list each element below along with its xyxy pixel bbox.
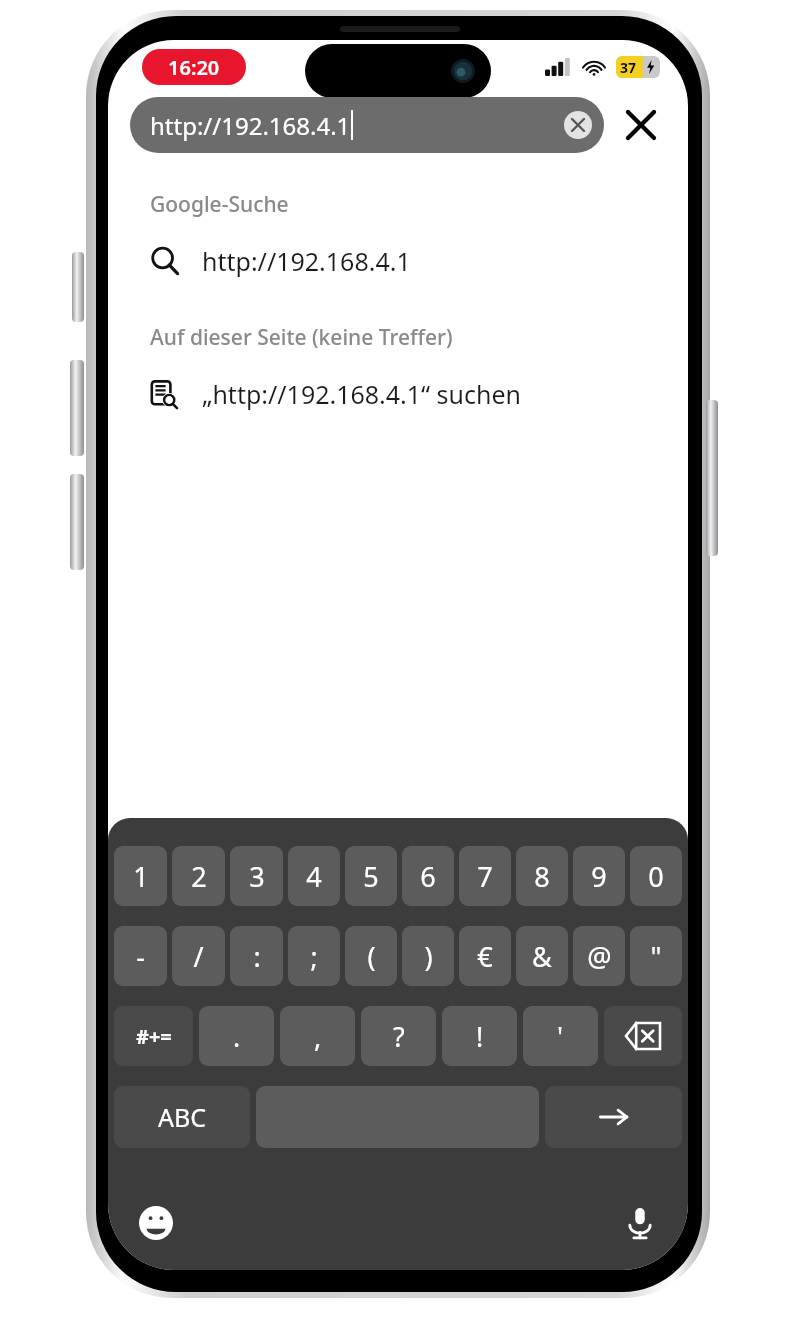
button[interactable]: 6 bbox=[402, 846, 454, 906]
button[interactable]: , bbox=[280, 1006, 355, 1066]
button[interactable]: : bbox=[230, 926, 283, 986]
button[interactable]: @ bbox=[573, 926, 625, 986]
button[interactable]: http://192.168.4.1 bbox=[108, 233, 688, 289]
button[interactable]: #+= bbox=[114, 1006, 193, 1066]
staticText: 6 bbox=[420, 858, 436, 895]
button[interactable]: 3 bbox=[230, 846, 283, 906]
button[interactable]: € bbox=[459, 926, 511, 986]
staticText: ABC bbox=[158, 1100, 207, 1134]
button[interactable]: Go bbox=[545, 1086, 682, 1148]
button[interactable]: 0 bbox=[630, 846, 682, 906]
staticText: : bbox=[253, 938, 261, 975]
staticText: 7 bbox=[477, 858, 493, 895]
staticText: Google-Suche bbox=[150, 190, 289, 219]
button[interactable]: 9 bbox=[573, 846, 625, 906]
button[interactable]: . bbox=[199, 1006, 274, 1066]
staticText: ? bbox=[393, 1018, 405, 1055]
button[interactable]: Backspace bbox=[604, 1006, 682, 1066]
button[interactable]: 8 bbox=[516, 846, 568, 906]
staticText: - bbox=[136, 938, 145, 975]
staticText: http://192.168.4.1 bbox=[202, 244, 411, 278]
button[interactable]: Emoji bbox=[134, 1201, 178, 1245]
button[interactable]: - bbox=[114, 926, 167, 986]
staticText: 5 bbox=[363, 858, 379, 895]
staticText: http://192.168.4.1 bbox=[150, 109, 351, 142]
staticText: ; bbox=[310, 938, 318, 975]
staticText: € bbox=[477, 938, 493, 975]
button[interactable]: ! bbox=[442, 1006, 517, 1066]
button[interactable]: / bbox=[172, 926, 225, 986]
staticText: . bbox=[233, 1018, 241, 1055]
button[interactable]: & bbox=[516, 926, 568, 986]
staticText: 3 bbox=[249, 858, 265, 895]
button[interactable]: Close bbox=[612, 96, 670, 154]
button[interactable]: Voice input bbox=[618, 1201, 662, 1245]
staticText: , bbox=[314, 1018, 322, 1055]
staticText: " bbox=[650, 938, 662, 975]
staticText: & bbox=[532, 938, 552, 975]
button[interactable]: ? bbox=[361, 1006, 436, 1066]
staticText: 2 bbox=[191, 858, 207, 895]
button[interactable]: 5 bbox=[345, 846, 397, 906]
button[interactable]: ) bbox=[402, 926, 454, 986]
button[interactable]: 2 bbox=[172, 846, 225, 906]
staticText: / bbox=[193, 938, 204, 975]
staticText: #+= bbox=[136, 1023, 172, 1050]
staticText: ! bbox=[476, 1018, 484, 1055]
staticText: „http://192.168.4.1“ suchen bbox=[202, 377, 521, 411]
staticText: 8 bbox=[534, 858, 550, 895]
button[interactable]: ; bbox=[288, 926, 340, 986]
button[interactable]: ' bbox=[523, 1006, 598, 1066]
button[interactable]: ( bbox=[345, 926, 397, 986]
button[interactable]: 7 bbox=[459, 846, 511, 906]
button[interactable]: ABC bbox=[114, 1086, 250, 1148]
staticText: 9 bbox=[591, 858, 607, 895]
button[interactable]: „http://192.168.4.1“ suchen bbox=[108, 366, 688, 422]
button[interactable]: Clear text bbox=[564, 111, 592, 139]
staticText: 37 bbox=[620, 58, 637, 77]
staticText: 0 bbox=[648, 858, 664, 895]
staticText: Auf dieser Seite (keine Treffer) bbox=[150, 323, 453, 352]
staticText: 1 bbox=[133, 858, 149, 895]
button[interactable]: http://192.168.4.1 bbox=[130, 97, 604, 153]
staticText: 16:20 bbox=[168, 54, 220, 81]
button[interactable]: 4 bbox=[288, 846, 340, 906]
button[interactable]: 1 bbox=[114, 846, 167, 906]
staticText: @ bbox=[587, 938, 612, 975]
staticText: ) bbox=[424, 938, 433, 975]
button[interactable]: " bbox=[630, 926, 682, 986]
staticText: 4 bbox=[306, 858, 322, 895]
staticText: ( bbox=[367, 938, 376, 975]
staticText: ' bbox=[557, 1018, 564, 1055]
